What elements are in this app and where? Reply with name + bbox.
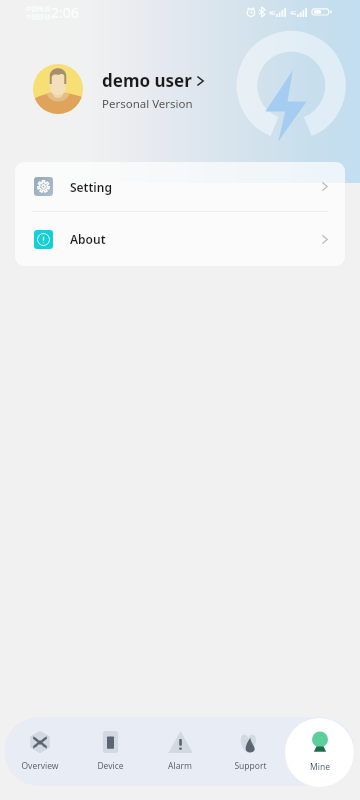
staticText: demo user xyxy=(102,69,192,92)
staticText: 中国电信 xyxy=(26,5,50,13)
button[interactable]: Support xyxy=(215,723,285,780)
button[interactable]: Overview xyxy=(4,723,75,780)
staticText: Alarm xyxy=(168,760,192,772)
staticText: Device xyxy=(97,760,124,772)
staticText: 中国移动 xyxy=(26,13,50,21)
staticText: Support xyxy=(234,760,267,772)
staticText: 4G xyxy=(290,10,297,17)
button[interactable]: About xyxy=(15,212,345,266)
staticText: Setting xyxy=(70,179,112,195)
staticText: About xyxy=(70,231,106,247)
staticText: Personal Version xyxy=(102,96,193,112)
staticText: 2:06 xyxy=(51,3,79,22)
button[interactable]: Device xyxy=(75,723,145,780)
staticText: Mine xyxy=(310,761,330,773)
button[interactable]: Setting xyxy=(15,162,345,211)
button[interactable]: Alarm xyxy=(145,723,215,780)
button[interactable]: demo user xyxy=(33,64,360,114)
button[interactable]: Mine xyxy=(285,718,354,787)
staticText: 4G xyxy=(269,10,276,17)
staticText: Overview xyxy=(21,760,59,772)
